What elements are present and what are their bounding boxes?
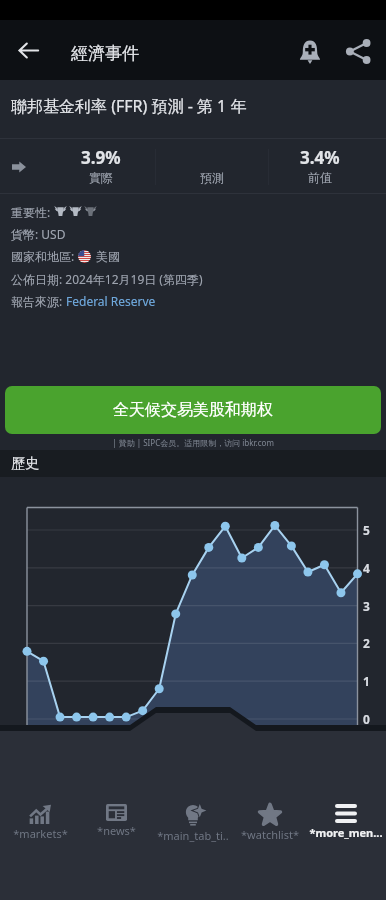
staticText: *markets* [13, 826, 68, 841]
button[interactable]: Add alert [286, 23, 334, 80]
button[interactable]: *markets* [3, 804, 77, 841]
staticText: 聯邦基金利率 (FFR) 預測 - 第 1 年 [11, 95, 247, 117]
staticText: 報告來源: [11, 293, 66, 309]
staticText: *more_men... [309, 825, 383, 840]
staticText: 歷史 [11, 455, 39, 473]
staticText: 全天候交易美股和期权 [113, 400, 273, 420]
staticText: *news* [97, 823, 136, 838]
staticText: 國家和地區: [11, 248, 78, 264]
staticText: 實際 [89, 170, 113, 185]
button[interactable]: Back [8, 20, 49, 80]
staticText: *watchlist* [241, 827, 299, 842]
staticText: 3.4% [300, 146, 340, 169]
staticText: 3.9% [81, 146, 121, 169]
staticText: 5 [363, 522, 370, 538]
button[interactable]: *watchlist* [233, 804, 307, 842]
staticText: 預測 [200, 170, 224, 185]
staticText: 1 [363, 673, 370, 689]
staticText: 美國 [96, 249, 120, 264]
staticText: 0 [363, 711, 370, 727]
staticText: 4 [363, 560, 370, 576]
staticText: 公佈日期: 2024年12月19日 (第四季) [11, 271, 203, 287]
button[interactable]: Share [334, 23, 382, 80]
button[interactable]: Federal Reserve [66, 293, 156, 309]
staticText: Federal Reserve [66, 293, 156, 309]
button[interactable]: *news* [79, 804, 153, 838]
button[interactable]: *more_men... [309, 804, 383, 840]
staticText: 2 [363, 635, 370, 651]
button[interactable]: 全天候交易美股和期权 [5, 386, 381, 434]
staticText: *main_tab_ti... [156, 828, 230, 843]
button[interactable]: *main_tab_ti... [156, 804, 230, 843]
staticText: | 贊助 | SIPC会员。适用限制，访问 ibkr.com [112, 437, 274, 448]
staticText: 重要性: [11, 204, 54, 218]
staticText: 貨幣: USD [11, 226, 66, 242]
staticText: 經濟事件 [71, 43, 139, 64]
staticText: 3 [363, 598, 370, 614]
staticText: 前值 [308, 170, 332, 185]
